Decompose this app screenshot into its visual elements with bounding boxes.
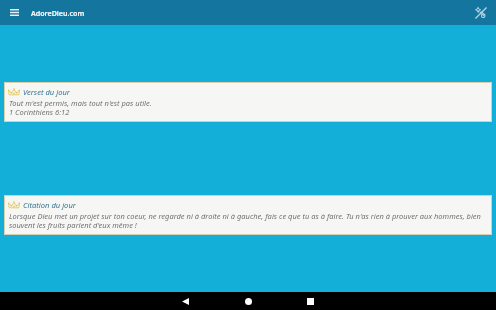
staticText: Citation du jour [23, 200, 76, 210]
staticText: Lorsque Dieu met un projet sur ton coeur… [9, 211, 481, 230]
button[interactable]: Citation du jour [4, 195, 492, 235]
staticText: Tout m'est permis, mais tout n'est pas u… [9, 98, 152, 117]
button[interactable]: Recents [290, 292, 330, 310]
staticText: Verset du jour [23, 87, 70, 97]
button[interactable]: Menu [5, 3, 24, 22]
button[interactable]: Back [165, 292, 205, 310]
button[interactable]: Auto fix off [471, 3, 491, 23]
button[interactable]: Verset du jour [4, 82, 492, 122]
button[interactable]: Home [228, 292, 268, 310]
staticText: AdoreDieu.com [31, 8, 85, 18]
